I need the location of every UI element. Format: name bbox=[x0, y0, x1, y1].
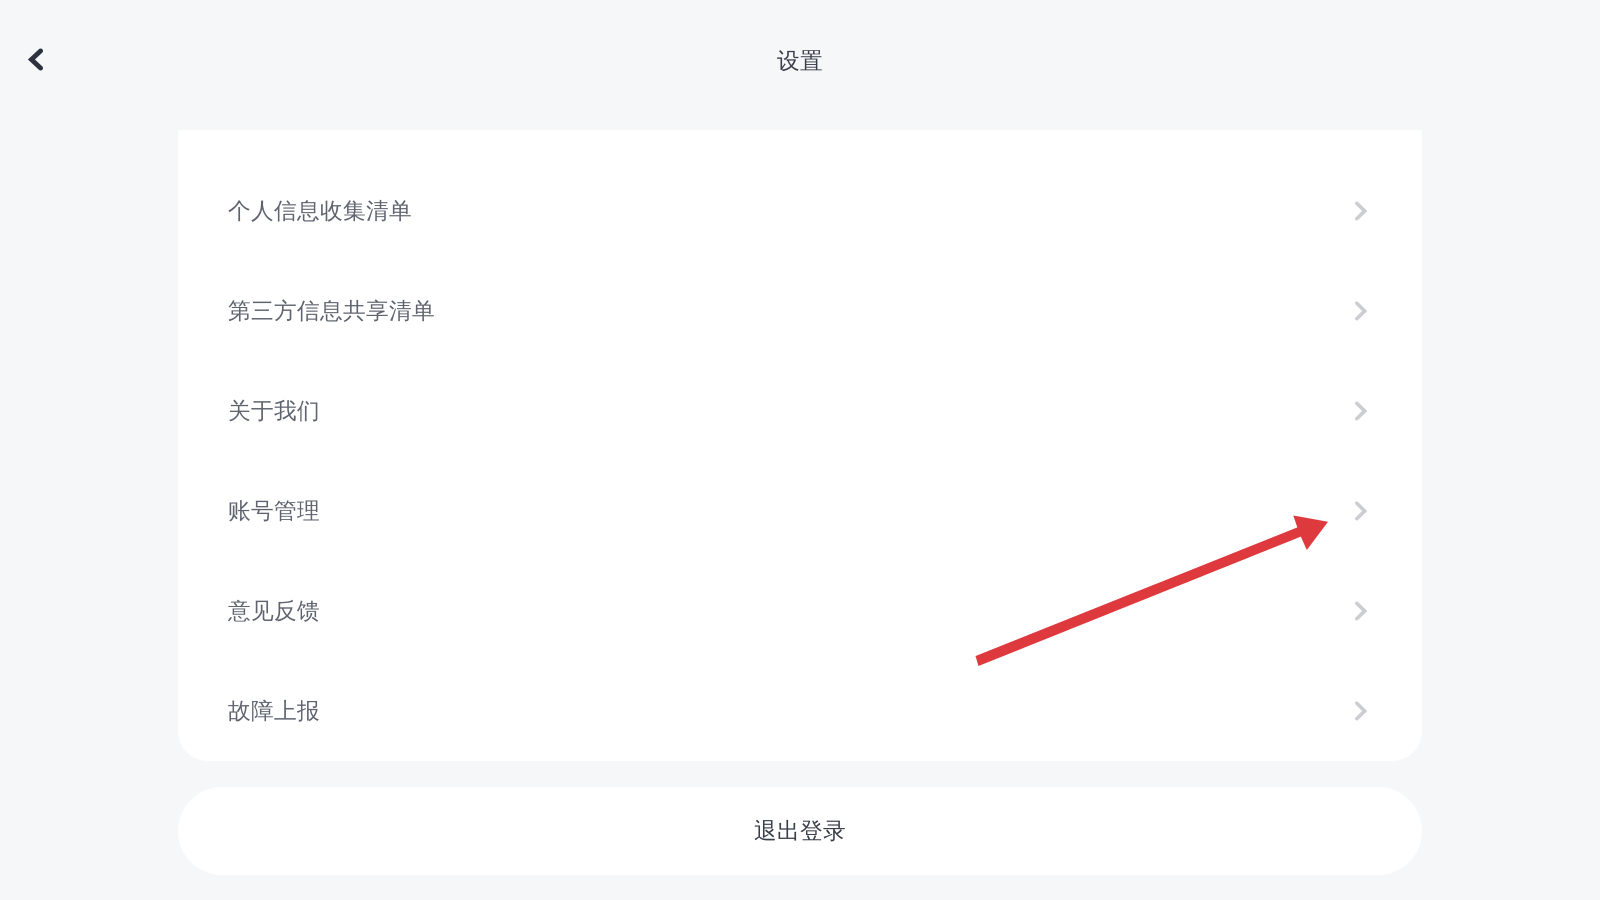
button[interactable]: 退出登录 bbox=[178, 787, 1422, 875]
staticText: 退出登录 bbox=[754, 817, 846, 845]
button[interactable]: 意见反馈 bbox=[178, 561, 1422, 661]
button[interactable]: 第三方信息共享清单 bbox=[178, 261, 1422, 361]
staticText: 故障上报 bbox=[228, 697, 320, 725]
button[interactable]: Back bbox=[0, 18, 68, 111]
staticText: 关于我们 bbox=[228, 397, 320, 425]
button[interactable]: 个人信息收集清单 bbox=[178, 161, 1422, 261]
button[interactable]: 故障上报 bbox=[178, 661, 1422, 761]
staticText: 意见反馈 bbox=[228, 597, 320, 625]
button[interactable]: 账号管理 bbox=[178, 461, 1422, 561]
staticText: 设置 bbox=[777, 47, 823, 75]
button[interactable]: 关于我们 bbox=[178, 361, 1422, 461]
staticText: 第三方信息共享清单 bbox=[228, 297, 435, 325]
staticText: 账号管理 bbox=[228, 497, 320, 525]
staticText: 个人信息收集清单 bbox=[228, 197, 412, 225]
